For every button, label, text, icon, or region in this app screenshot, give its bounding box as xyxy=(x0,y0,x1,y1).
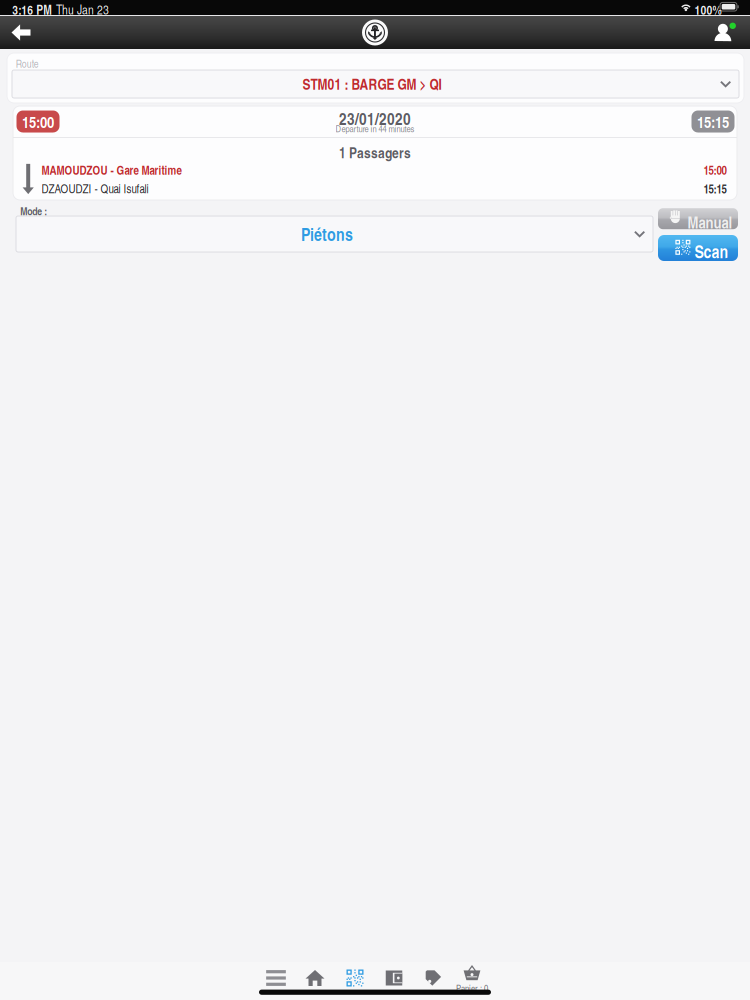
staticText: 15:00 xyxy=(703,162,726,178)
button[interactable]: Back xyxy=(2,16,40,49)
staticText: Mode : xyxy=(20,203,47,218)
button[interactable]: Home xyxy=(358,16,392,49)
button[interactable]: Scan ticket xyxy=(338,965,372,991)
staticText: 15:15 xyxy=(697,110,729,133)
button[interactable]: Account xyxy=(706,16,740,49)
staticText: 1 Passagers xyxy=(339,142,411,163)
button[interactable]: Manual xyxy=(658,209,738,230)
staticText: 23/01/2020 xyxy=(339,107,411,130)
staticText: Piétons xyxy=(301,222,353,246)
staticText: Scan xyxy=(695,239,729,264)
button[interactable]: Piétons xyxy=(16,216,653,252)
staticText: Thu Jan 23 xyxy=(56,1,109,18)
staticText: STM01 : BARGE GM > QI xyxy=(302,74,441,94)
button[interactable]: Wallet xyxy=(377,965,411,991)
button[interactable]: Menu xyxy=(259,965,293,991)
button[interactable]: Basket xyxy=(455,965,489,991)
staticText: Panier : 0 xyxy=(456,981,488,994)
button[interactable]: Scan xyxy=(658,235,738,261)
staticText: MAMOUDZOU - Gare Maritime xyxy=(41,162,181,178)
staticText: 3:16 PM xyxy=(12,1,52,19)
staticText: 15:00 xyxy=(22,110,54,133)
staticText: DZAOUDZI - Quai Isufali xyxy=(41,180,148,197)
button[interactable]: STM01 : BARGE GM > QI xyxy=(12,70,739,98)
staticText: 15:15 xyxy=(703,180,726,197)
staticText: 100% xyxy=(694,1,721,19)
staticText: Manual xyxy=(687,211,732,233)
staticText: Departure in 44 minutes xyxy=(335,122,414,135)
staticText: Route xyxy=(16,56,39,71)
button[interactable]: Home xyxy=(298,965,332,991)
button[interactable]: Tickets xyxy=(416,965,450,991)
